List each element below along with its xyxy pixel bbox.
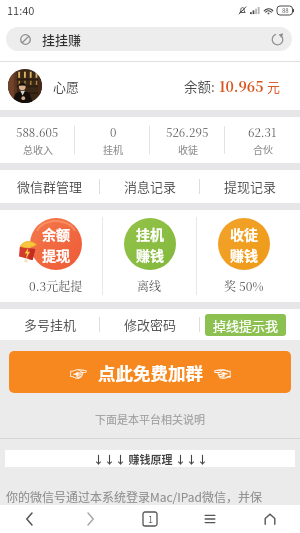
staticText: 奖 50%: [224, 277, 264, 294]
staticText: 588.605: [16, 124, 59, 141]
staticText: 提现记录: [224, 177, 277, 196]
staticText: 微信群管理: [17, 177, 83, 196]
button[interactable]: Back: [0, 505, 60, 533]
button[interactable]: 0: [75, 117, 150, 163]
button[interactable]: 微信群管理: [0, 170, 100, 203]
staticText: 总收入: [23, 142, 53, 156]
staticText: 526.295: [166, 124, 209, 141]
button[interactable]: 挂挂赚: [6, 27, 292, 51]
staticText: 88: [282, 6, 289, 15]
staticText: 多号挂机: [24, 315, 77, 334]
button[interactable]: Home: [240, 505, 300, 533]
staticText: 11:40: [7, 2, 35, 18]
staticText: 下面是本平台相关说明: [0, 411, 300, 427]
staticText: 合伙: [253, 142, 273, 156]
staticText: 0.3元起提: [29, 277, 83, 294]
staticText: 1: [148, 513, 153, 526]
staticText: 挂机: [103, 142, 123, 156]
staticText: 余额: [42, 224, 70, 244]
button[interactable]: 62.31: [225, 117, 300, 163]
button[interactable]: ☞: [9, 351, 291, 393]
button[interactable]: 526.295: [150, 117, 225, 163]
staticText: 点此免费加群: [98, 360, 203, 385]
button[interactable]: 588.605: [0, 117, 75, 163]
button[interactable]: 修改密码: [100, 309, 200, 340]
staticText: 掉线提示我: [213, 316, 279, 335]
button[interactable]: Refresh: [271, 33, 284, 46]
staticText: 元: [267, 77, 281, 96]
button[interactable]: 余额: [10, 210, 102, 302]
staticText: 赚钱: [136, 245, 164, 265]
staticText: 余额:: [184, 76, 215, 96]
staticText: 62.31: [248, 124, 277, 141]
staticText: 你的微信号通过本系统登录Mac/IPad微信，并保: [6, 488, 300, 505]
staticText: 10.965: [219, 76, 264, 96]
button[interactable]: 消息记录: [100, 170, 200, 203]
button[interactable]: Menu: [180, 505, 240, 533]
button[interactable]: 提现记录: [200, 170, 300, 203]
staticText: 赚钱: [230, 245, 258, 265]
staticText: 提现: [42, 245, 70, 265]
button[interactable]: Forward: [60, 505, 120, 533]
staticText: 0: [110, 124, 117, 141]
staticText: 离线: [137, 277, 162, 294]
staticText: ☞: [70, 360, 87, 385]
button[interactable]: ↓↓↓ 赚钱原理 ↓↓↓: [5, 450, 295, 467]
staticText: 收徒: [230, 224, 258, 244]
staticText: 修改密码: [124, 315, 177, 334]
staticText: 心愿: [53, 77, 80, 96]
button[interactable]: Tabs: [120, 505, 180, 533]
button[interactable]: 收徒: [197, 210, 290, 302]
button[interactable]: 多号挂机: [0, 309, 100, 340]
staticText: 挂机: [136, 224, 164, 244]
staticText: ↓↓↓ 赚钱原理 ↓↓↓: [93, 451, 208, 467]
staticText: 收徒: [178, 142, 198, 156]
button[interactable]: 掉线提示我: [205, 314, 286, 336]
staticText: 挂挂赚: [42, 30, 82, 49]
button[interactable]: 挂机: [103, 210, 196, 302]
staticText: 消息记录: [124, 177, 177, 196]
staticText: ☜: [214, 360, 231, 385]
